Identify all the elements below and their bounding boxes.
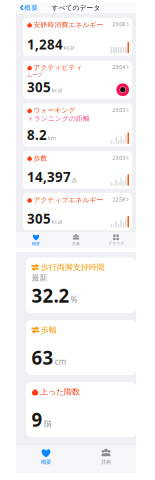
staticText: ＋ランニングの距離 xyxy=(27,114,90,123)
button[interactable]: アクティビティ xyxy=(23,60,132,99)
button[interactable]: 共有 xyxy=(56,234,96,246)
staticText: アクティブエネルギー xyxy=(33,196,103,204)
button[interactable]: 歩幅 xyxy=(26,320,136,375)
staticText: 23:04 xyxy=(112,63,125,71)
staticText: 共有 xyxy=(101,459,111,465)
staticText: 歩幅 xyxy=(41,325,57,335)
button[interactable]: 概要 xyxy=(16,449,76,465)
staticText: 63 xyxy=(31,345,53,370)
staticText: 305 xyxy=(27,78,51,96)
staticText: アクティビティ xyxy=(33,63,82,72)
staticText: ブラウズ xyxy=(108,241,124,246)
button[interactable]: 概要 xyxy=(16,2,38,14)
staticText: 階 xyxy=(44,419,52,429)
staticText: ムーブ xyxy=(27,72,42,78)
staticText: 安静時消費エネルギー xyxy=(33,21,103,29)
staticText: kcal xyxy=(52,218,62,225)
staticText: kcal xyxy=(52,87,62,94)
staticText: % xyxy=(71,294,78,305)
staticText: 32.2 xyxy=(31,283,69,308)
button[interactable]: ブラウズ xyxy=(96,234,136,246)
button[interactable]: 概要 xyxy=(16,234,56,246)
staticText: 歩 xyxy=(72,177,77,183)
button[interactable]: ウォーキング xyxy=(23,103,132,147)
staticText: 概要 xyxy=(24,4,38,12)
staticText: 共有 xyxy=(72,241,80,246)
staticText: 歩行両脚支持時間 xyxy=(41,262,105,272)
staticText: 22:58 xyxy=(112,196,125,203)
staticText: 歩数 xyxy=(33,154,47,162)
staticText: 1,284 xyxy=(27,35,63,53)
button[interactable]: アクティブエネルギー xyxy=(23,193,132,230)
staticText: 305 xyxy=(27,210,51,227)
staticText: 23:03 xyxy=(112,106,125,113)
button[interactable]: 歩行両脚支持時間 xyxy=(26,257,136,313)
button[interactable]: 歩数 xyxy=(23,151,132,189)
button[interactable]: 共有 xyxy=(76,449,136,465)
staticText: 最新 xyxy=(31,273,47,283)
button[interactable]: 上った階数 xyxy=(26,382,136,437)
staticText: km xyxy=(48,134,56,142)
staticText: 9 xyxy=(31,407,42,432)
staticText: kcal xyxy=(64,44,74,51)
staticText: 概要 xyxy=(32,241,40,246)
staticText: 14,397 xyxy=(27,168,71,186)
staticText: 23:08 xyxy=(112,21,125,28)
staticText: 概要 xyxy=(41,459,51,465)
staticText: 23:03 xyxy=(112,154,125,161)
staticText: 8.2 xyxy=(27,126,47,144)
staticText: cm xyxy=(55,356,66,367)
button[interactable]: 安静時消費エネルギー xyxy=(23,18,132,56)
staticText: すべてのデータ xyxy=(51,4,100,12)
staticText: ウォーキング xyxy=(33,106,75,114)
staticText: 上った階数 xyxy=(40,387,80,397)
